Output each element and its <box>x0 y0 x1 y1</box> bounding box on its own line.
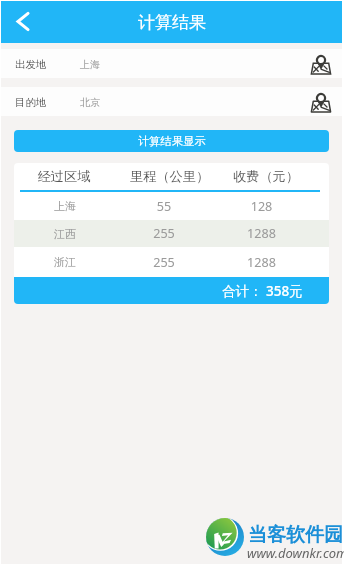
staticText: 收费（元） <box>225 168 307 185</box>
button[interactable]: Choose location on map <box>311 55 331 75</box>
staticText: 北京 <box>80 96 100 109</box>
button[interactable]: 合计： 358元 <box>14 277 329 304</box>
staticText: 128 <box>212 198 311 215</box>
staticText: www.downkr.com <box>247 544 344 562</box>
button[interactable]: 上海 <box>14 192 329 220</box>
staticText: 55 <box>116 198 212 215</box>
button[interactable]: 浙江 <box>14 247 329 277</box>
staticText: 计算结果 <box>138 12 206 33</box>
button[interactable]: Choose location on map <box>311 93 331 113</box>
staticText: 255 <box>116 225 212 242</box>
staticText: 255 <box>116 254 212 271</box>
button[interactable]: Back <box>6 6 39 39</box>
staticText: 合计： 358元 <box>222 282 303 300</box>
staticText: 目的地 <box>15 96 47 109</box>
staticText: 里程（公里） <box>114 168 225 185</box>
button[interactable]: 目的地 <box>1 87 342 116</box>
staticText: 上海 <box>14 199 116 213</box>
staticText: 出发地 <box>15 58 47 71</box>
staticText: 计算结果显示 <box>138 134 206 148</box>
staticText: 1288 <box>212 254 311 271</box>
staticText: 经过区域 <box>14 168 114 185</box>
button[interactable]: 出发地 <box>1 49 342 78</box>
button[interactable]: 江西 <box>14 220 329 247</box>
staticText: 1288 <box>212 225 311 242</box>
staticText: 上海 <box>80 58 100 71</box>
button[interactable]: 计算结果显示 <box>14 130 329 152</box>
staticText: 当客软件园 <box>248 523 343 547</box>
staticText: 浙江 <box>14 255 116 269</box>
staticText: 江西 <box>14 227 116 241</box>
